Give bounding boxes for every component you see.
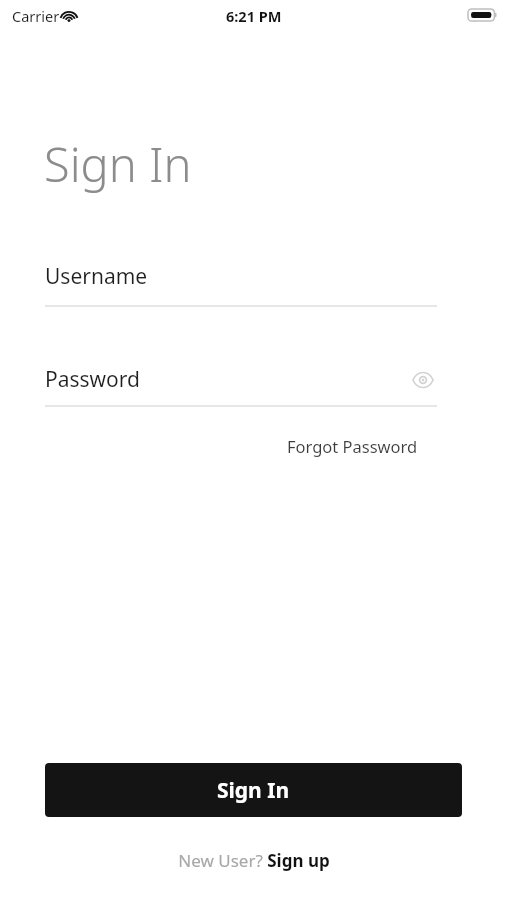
button[interactable]: Forgot Password bbox=[285, 432, 420, 460]
staticText: 6:21 PM bbox=[226, 6, 282, 26]
button[interactable]: Sign In bbox=[45, 763, 462, 817]
button[interactable]: New User? Sign up bbox=[172, 845, 336, 876]
staticText: New User? Sign up bbox=[178, 849, 330, 872]
staticText: Sign In bbox=[44, 132, 192, 196]
staticText: Carrier bbox=[12, 6, 60, 26]
staticText: Password bbox=[45, 365, 409, 394]
button[interactable]: Show password bbox=[409, 366, 437, 394]
staticText: Forgot Password bbox=[287, 435, 418, 457]
button[interactable]: Username bbox=[45, 262, 437, 307]
staticText: Sign In bbox=[217, 776, 290, 805]
staticText: Username bbox=[45, 262, 148, 291]
